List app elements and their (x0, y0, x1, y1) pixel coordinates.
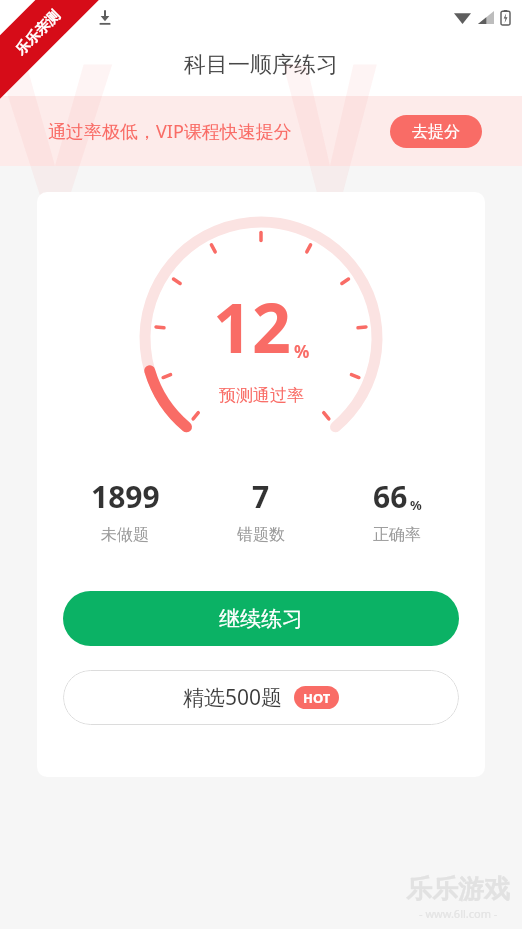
staticText: 12 (213, 280, 291, 373)
button[interactable]: 继续练习 (63, 591, 459, 646)
staticText: 通过率极低，VIP课程快速提分 (48, 119, 292, 144)
staticText: % (294, 340, 310, 363)
staticText: 错题数 (237, 525, 285, 545)
staticText: 预测通过率 (219, 385, 304, 406)
staticText: % (410, 496, 422, 514)
staticText: 正确率 (373, 525, 421, 545)
staticText: 未做题 (101, 525, 149, 545)
staticText: 1899 (91, 476, 160, 517)
staticText: 乐乐亲测 (12, 7, 64, 59)
staticText: 66 (373, 476, 408, 517)
staticText: 7 (252, 476, 270, 517)
staticText: 科目一顺序练习 (184, 51, 338, 79)
button[interactable]: 精选500题 (63, 670, 459, 725)
staticText: 去提分 (412, 122, 460, 142)
button[interactable]: 去提分 (390, 115, 482, 148)
staticText: HOT (303, 689, 331, 707)
staticText: 乐乐游戏 (406, 873, 510, 906)
staticText: - www.6ll.com - (419, 906, 498, 921)
staticText: 继续练习 (219, 606, 303, 632)
staticText: 精选500题 (183, 683, 283, 712)
